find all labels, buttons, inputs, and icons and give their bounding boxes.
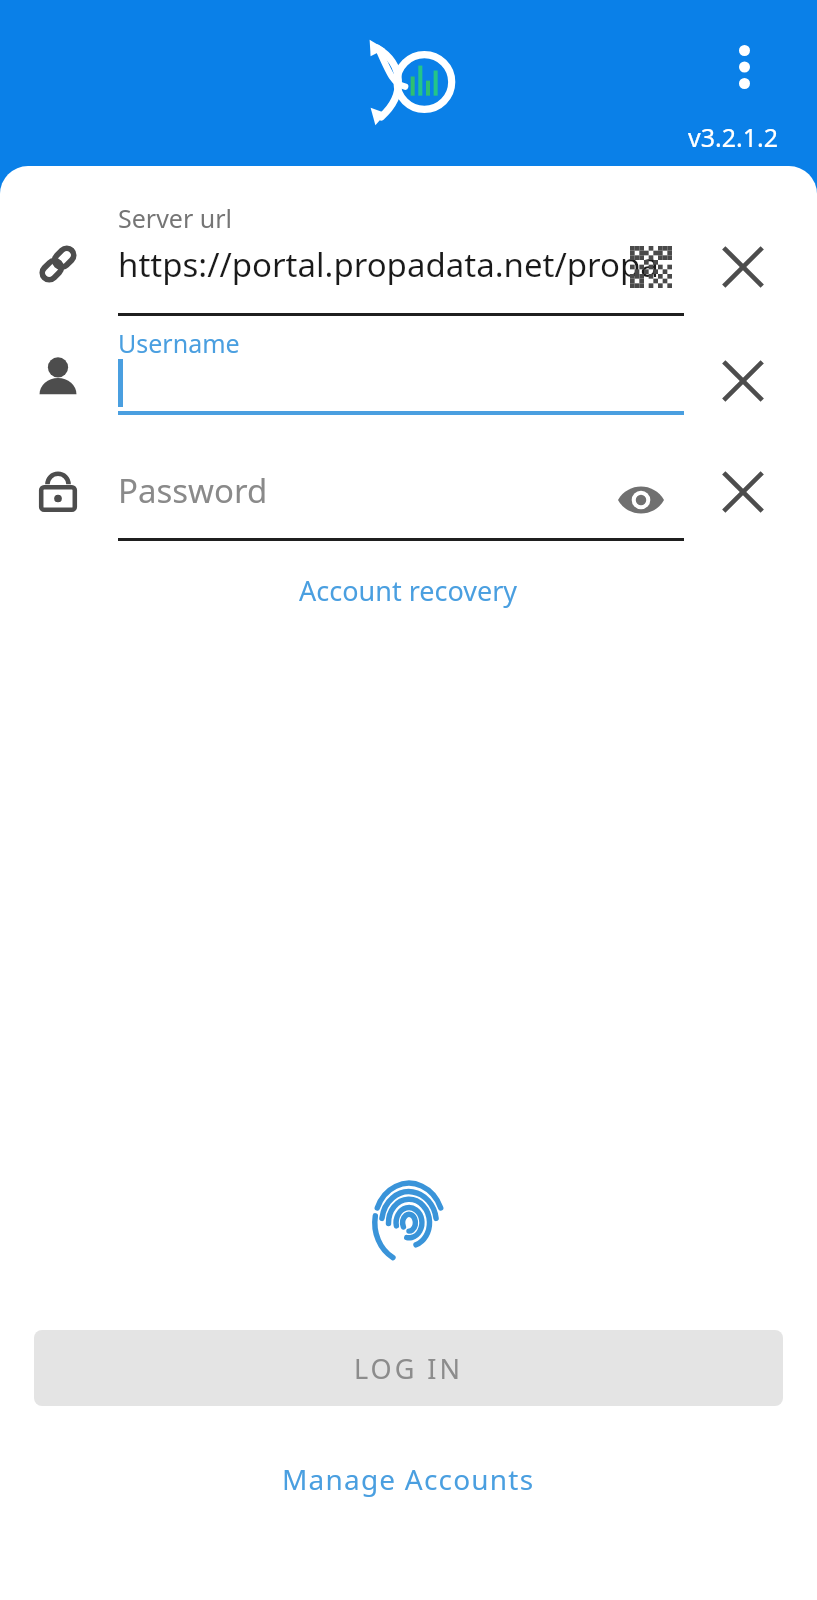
button[interactable]: Manage Accounts <box>268 1452 549 1506</box>
button[interactable]: Clear username <box>712 350 774 412</box>
button[interactable]: LOG IN <box>34 1330 783 1406</box>
staticText: Server url <box>118 201 233 235</box>
staticText: Password <box>118 468 268 513</box>
staticText: Account recovery <box>299 572 518 609</box>
staticText: Username <box>118 326 240 360</box>
button[interactable]: Clear server url <box>712 236 774 298</box>
button[interactable]: Username <box>26 346 90 410</box>
button[interactable]: Password <box>26 460 90 524</box>
staticText: LOG IN <box>354 1350 464 1387</box>
button[interactable]: Account recovery <box>285 566 532 615</box>
button[interactable]: Clear password <box>712 461 774 523</box>
button[interactable]: Show password <box>612 471 670 529</box>
button[interactable]: Scan QR code <box>622 238 680 296</box>
staticText: https://portal.propadata.net/propa <box>118 242 659 287</box>
button[interactable]: More options <box>715 38 773 96</box>
staticText: v3.2.1.2 <box>688 120 779 154</box>
button[interactable]: Login with fingerprint <box>359 1166 459 1266</box>
button[interactable]: Server url <box>26 232 90 296</box>
staticText: Manage Accounts <box>282 1460 535 1498</box>
